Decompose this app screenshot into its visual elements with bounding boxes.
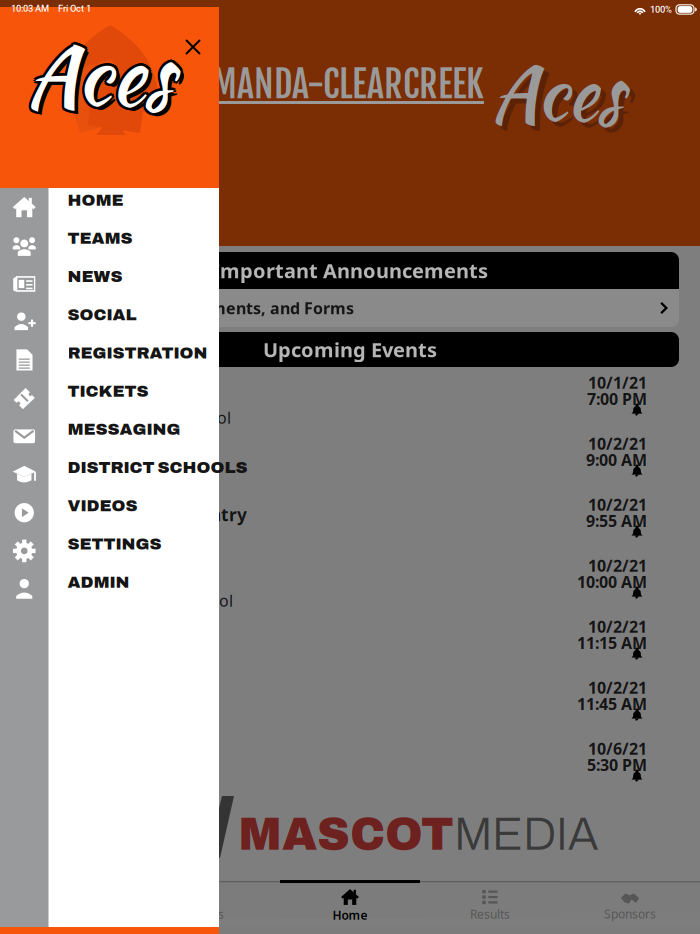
button[interactable]: Home [280, 887, 420, 925]
staticText: HOME [67, 191, 123, 209]
staticText: Important Announcements [212, 257, 488, 284]
staticText: Aces [23, 15, 170, 135]
staticText: 11:15 AM [577, 632, 647, 653]
staticText: REGISTRATION [67, 344, 207, 362]
staticText: Aces [29, 18, 176, 138]
staticText: VIDEOS [67, 497, 137, 515]
staticText: vs Bloom-Carroll High School [14, 590, 233, 611]
staticText: 10/2/21 [588, 494, 647, 515]
button[interactable]: MESSAGING [0, 417, 219, 455]
staticText: Boys Varsity Soccer [14, 686, 183, 709]
button[interactable]: DISTRICT SCHOOLS [0, 455, 219, 494]
staticText: TEAMS [67, 229, 132, 247]
staticText: 7:00 PM [587, 388, 647, 409]
button[interactable]: HOME [0, 188, 219, 226]
staticText: SETTINGS [67, 535, 161, 553]
staticText: 10/1/21 [588, 372, 647, 393]
staticText: 9:00 AM [586, 449, 647, 470]
staticText: TICKETS [67, 382, 148, 400]
button[interactable]: TICKETS [0, 379, 219, 417]
button[interactable]: Results [420, 887, 560, 925]
staticText: Stats [196, 906, 224, 922]
staticText: Aces [26, 12, 173, 132]
staticText: 11:45 AM [577, 693, 647, 714]
staticText: Girls Varsity Soccer [14, 381, 182, 404]
staticText: Girls Varsity Cross Country [14, 503, 247, 526]
staticText: MSL Tournament [14, 468, 144, 489]
button[interactable]: HUB Alerts, Announcements, and Forms [21, 289, 679, 327]
staticText: Results [470, 906, 510, 922]
staticText: Girls Varsity Volleyball [14, 747, 208, 770]
staticText: Fri Oct 1 [58, 3, 91, 14]
staticText: 9:55 AM [586, 510, 647, 531]
staticText: 10:03 AM [11, 3, 49, 14]
staticText: 10/6/21 [588, 738, 647, 759]
staticText: MESSAGING [67, 420, 180, 438]
staticText: MSL Match [14, 712, 98, 733]
staticText: NEWS [67, 267, 122, 285]
staticText: Upcoming Events [263, 336, 437, 363]
button[interactable]: Close menu [176, 30, 210, 64]
button[interactable]: ADMIN [0, 570, 219, 608]
staticText: 10/2/21 [588, 616, 647, 637]
staticText: Home [332, 907, 367, 923]
button[interactable]: Boys Varsity Soccer [0, 672, 700, 733]
staticText: 10/2/21 [588, 677, 647, 698]
button[interactable]: Teams [0, 887, 140, 925]
button[interactable]: Girls Varsity Volleyball [0, 733, 700, 794]
staticText: ADMIN [67, 573, 129, 591]
staticText: 100% [650, 4, 672, 15]
staticText: Aces [491, 39, 623, 147]
staticText: Aces [26, 18, 173, 138]
staticText: DISTRICT SCHOOLS [67, 458, 247, 476]
staticText: Senior Night [14, 773, 109, 794]
button[interactable]: Boys Varsity Football [0, 550, 700, 611]
staticText: Aces [26, 15, 173, 135]
button[interactable]: REGISTRATION [0, 341, 219, 379]
staticText: MSL Championship [14, 529, 160, 550]
staticText: HUB Alerts, Announcements, and Forms [35, 297, 354, 319]
staticText: 10/2/21 [588, 433, 647, 454]
staticText: 10/2/21 [588, 555, 647, 576]
staticText: Aces [24, 17, 171, 137]
staticText: Boys Varsity Golf [14, 442, 162, 465]
button[interactable]: Stats [140, 887, 280, 925]
staticText: Aces [29, 15, 176, 135]
staticText: MEDIA [454, 810, 598, 859]
staticText: Aces [24, 13, 171, 133]
staticText: Boys Varsity Football [14, 564, 197, 587]
staticText: Tri-Match [14, 651, 86, 672]
button[interactable]: Girls Varsity Cross Country [0, 489, 700, 550]
button[interactable]: SOCIAL [0, 303, 219, 341]
staticText: Girls JV Volleyball [14, 625, 164, 648]
button[interactable]: SETTINGS [0, 532, 219, 570]
staticText: 5:30 PM [587, 754, 647, 775]
button[interactable]: Sponsors [560, 887, 700, 925]
staticText: Aces [28, 13, 175, 133]
staticText: MASCOT [238, 810, 454, 859]
button[interactable]: Girls JV Volleyball [0, 611, 700, 672]
staticText: Aces [496, 44, 628, 152]
staticText: AMANDA-CLEARCREEK [195, 62, 484, 107]
button[interactable]: VIDEOS [0, 494, 219, 532]
button[interactable]: TEAMS [0, 226, 219, 264]
staticText: vs Liberty Union High School [14, 407, 231, 428]
button[interactable]: Boys Varsity Golf [0, 428, 700, 489]
staticText: 10:00 AM [577, 571, 647, 592]
staticText: SOCIAL [67, 306, 136, 324]
button[interactable]: Girls Varsity Soccer [0, 367, 700, 428]
staticText: Sponsors [604, 906, 656, 922]
button[interactable]: NEWS [0, 264, 219, 303]
